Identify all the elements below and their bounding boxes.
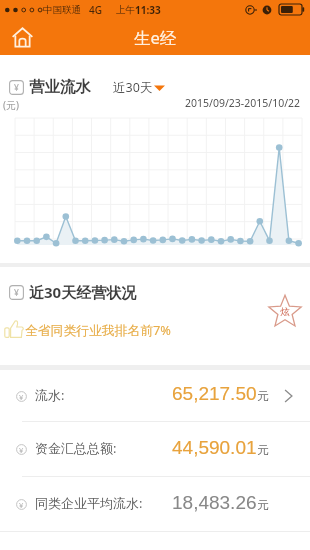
staticText: 元 — [257, 389, 269, 403]
staticText: 近30天 — [113, 79, 153, 96]
staticText: 同类企业平均流水: — [35, 494, 143, 512]
button[interactable]: ¥ — [0, 370, 310, 421]
staticText: ¥ — [19, 392, 24, 402]
staticText: 2015/09/23-2015/10/22 — [185, 96, 301, 110]
staticText: 营业流水 — [29, 77, 91, 97]
staticText: 上午 — [116, 4, 135, 16]
staticText: 44,590.01 — [172, 437, 257, 458]
staticText: 18,483.26 — [172, 492, 257, 513]
staticText: 元 — [257, 498, 269, 512]
staticText: ¥ — [19, 445, 24, 455]
staticText: 11:33 — [135, 3, 161, 17]
staticText: ¥ — [14, 287, 19, 299]
staticText: ¥ — [14, 82, 19, 94]
button[interactable]: ¥ — [0, 477, 310, 531]
staticText: 炫 — [280, 306, 290, 318]
staticText: 资金汇总总额: — [35, 439, 117, 457]
button[interactable]: Home — [7, 22, 37, 52]
staticText: 元 — [257, 443, 269, 457]
staticText: 中国联通 — [43, 4, 81, 16]
staticText: 流水: — [35, 386, 65, 404]
staticText: 65,217.50 — [172, 383, 257, 404]
staticText: (元) — [3, 98, 19, 112]
staticText: 全省同类行业我排名前7% — [25, 321, 171, 338]
staticText: 4G — [89, 3, 102, 17]
staticText: 近30天经营状况 — [29, 282, 137, 302]
button[interactable]: 近30天 — [113, 79, 166, 96]
staticText: ¥ — [19, 500, 24, 510]
staticText: 生e经 — [134, 26, 177, 49]
button[interactable]: ¥ — [0, 422, 310, 476]
